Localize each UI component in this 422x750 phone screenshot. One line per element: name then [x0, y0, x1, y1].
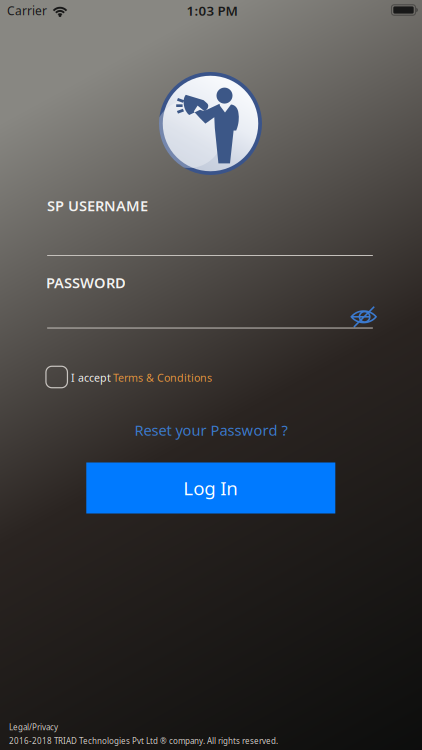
- staticText: SP USERNAME: [47, 196, 148, 215]
- button[interactable]: Terms & Conditions: [113, 368, 293, 386]
- button[interactable]: Log In: [86, 462, 335, 513]
- staticText: PASSWORD: [46, 273, 126, 292]
- staticText: 2016-2018 TRIAD Technologies Pvt Ltd ® c…: [9, 735, 278, 746]
- staticText: Legal/Privacy: [9, 722, 58, 732]
- staticText: Reset your Password ?: [134, 420, 287, 440]
- button[interactable]: Legal/Privacy: [9, 722, 58, 732]
- button[interactable]: Show password: [347, 300, 379, 332]
- button[interactable]: Accept terms and conditions: [43, 363, 70, 391]
- button[interactable]: Reset your Password ?: [111, 419, 311, 441]
- staticText: 1:03 PM: [186, 2, 237, 19]
- staticText: Terms & Conditions: [113, 370, 212, 385]
- staticText: I accept: [71, 370, 111, 385]
- staticText: Log In: [183, 476, 238, 500]
- staticText: Carrier: [7, 2, 47, 18]
